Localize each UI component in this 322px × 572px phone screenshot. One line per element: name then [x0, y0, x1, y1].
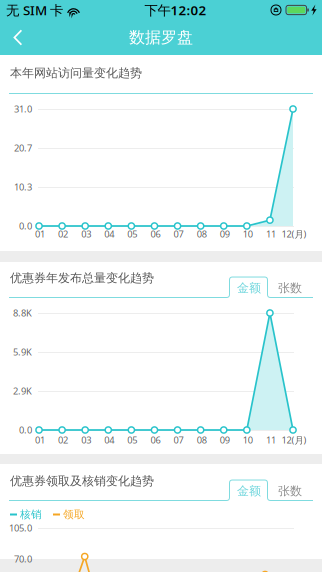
staticText: 核销 — [20, 508, 42, 521]
button[interactable]: Back — [0, 20, 35, 55]
staticText: 0.0 — [19, 220, 32, 232]
staticText: 12(月) — [281, 228, 306, 240]
staticText: 08 — [197, 434, 207, 446]
staticText: 10 — [243, 434, 253, 446]
staticText: 06 — [150, 434, 160, 446]
staticText: 09 — [220, 228, 230, 240]
staticText: 04 — [104, 228, 114, 240]
staticText: 0.0 — [19, 424, 32, 436]
staticText: 优惠券年发布总量变化趋势 — [10, 271, 154, 285]
staticText: 10 — [243, 228, 253, 240]
staticText: 11 — [266, 434, 276, 446]
staticText: 10.3 — [14, 181, 32, 193]
staticText: 06 — [150, 228, 160, 240]
staticText: 张数 — [278, 281, 302, 295]
staticText: 02 — [58, 228, 68, 240]
button[interactable]: 金额 — [230, 278, 268, 298]
staticText: 金额 — [237, 484, 261, 498]
staticText: 08 — [197, 228, 207, 240]
staticText: 09 — [220, 434, 230, 446]
staticText: 03 — [81, 434, 91, 446]
staticText: 01 — [35, 434, 45, 446]
staticText: 12(月) — [281, 434, 306, 446]
staticText: 11 — [266, 228, 276, 240]
staticText: 8.8K — [13, 307, 32, 319]
button[interactable]: 张数 — [271, 278, 309, 298]
staticText: 金额 — [237, 281, 261, 295]
button[interactable]: 金额 — [230, 481, 268, 501]
staticText: 5.9K — [13, 346, 32, 358]
staticText: 本年网站访问量变化趋势 — [10, 66, 142, 80]
staticText: 下午12:02 — [144, 1, 206, 19]
staticText: 05 — [127, 228, 137, 240]
staticText: 01 — [35, 228, 45, 240]
staticText: 04 — [104, 434, 114, 446]
staticText: 70.0 — [14, 553, 32, 565]
staticText: 07 — [173, 434, 183, 446]
staticText: 领取 — [63, 508, 85, 521]
staticText: 优惠券领取及核销变化趋势 — [10, 474, 154, 488]
staticText: 03 — [81, 228, 91, 240]
button[interactable]: 张数 — [271, 481, 309, 501]
staticText: 07 — [173, 228, 183, 240]
staticText: 张数 — [278, 484, 302, 498]
staticText: 31.0 — [14, 103, 32, 115]
staticText: 105.0 — [9, 522, 32, 534]
staticText: 05 — [127, 434, 137, 446]
staticText: 2.9K — [13, 385, 32, 397]
staticText: 数据罗盘 — [129, 28, 193, 47]
staticText: 20.7 — [14, 142, 32, 154]
staticText: 无 SIM 卡 — [6, 1, 63, 19]
staticText: 02 — [58, 434, 68, 446]
